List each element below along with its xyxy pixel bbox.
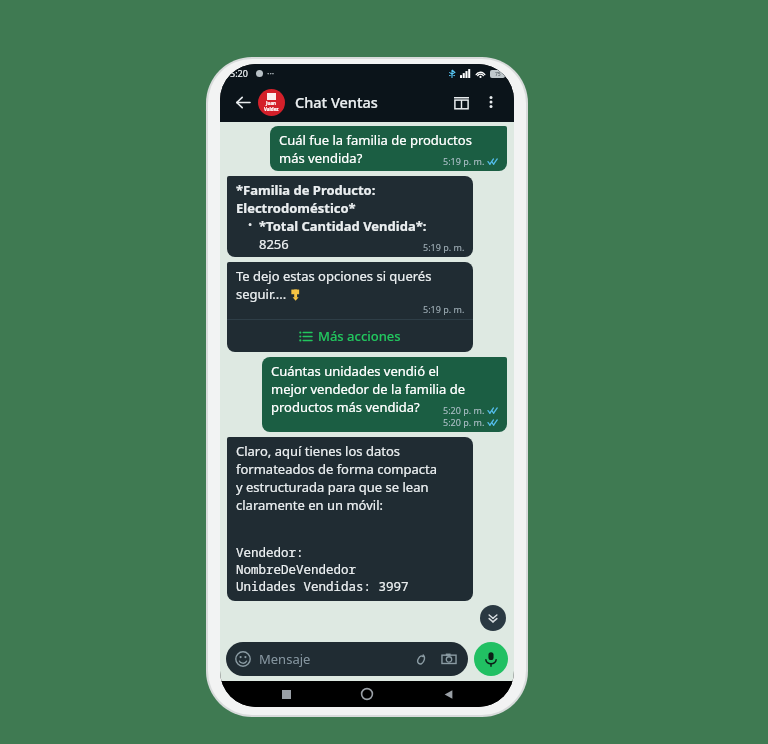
staticText: Mensaje xyxy=(259,650,311,668)
staticText: Chat Ventas xyxy=(295,92,378,112)
staticText: • xyxy=(248,217,253,232)
button[interactable]: Te dejo estas opciones si querés xyxy=(227,262,473,352)
staticText: Unidades Vendidas: 3997 xyxy=(236,578,409,595)
staticText: Te dejo estas opciones si querés xyxy=(236,267,432,285)
button[interactable]: Back xyxy=(228,88,256,116)
staticText: claramente en un móvil: xyxy=(236,496,383,514)
button[interactable]: Voice message xyxy=(474,642,508,676)
button[interactable]: Más acciones xyxy=(227,320,473,352)
staticText: *Familia de Producto: xyxy=(236,181,376,199)
staticText: mejor vendedor de la familia de xyxy=(271,380,466,398)
button[interactable]: Recents xyxy=(271,681,301,707)
button[interactable]: Camera xyxy=(439,649,459,669)
staticText: Vendedor: xyxy=(236,544,304,561)
staticText: 5:19 p. m. xyxy=(443,155,485,167)
button[interactable]: More options xyxy=(476,87,506,117)
staticText: 5:20 p. m. xyxy=(443,404,485,416)
staticText: y estructurada para que se lean xyxy=(236,478,429,496)
staticText: Cuál fue la familia de productos xyxy=(279,131,472,149)
button[interactable]: Scroll to bottom xyxy=(480,605,506,631)
button[interactable]: Cuál fue la familia de productos xyxy=(270,126,507,171)
staticText: seguir.... xyxy=(236,285,287,303)
button[interactable]: Mensaje xyxy=(226,642,468,676)
staticText: Juan xyxy=(266,100,277,106)
staticText: más vendida? xyxy=(279,149,363,167)
button[interactable]: *Familia de Producto: xyxy=(227,176,473,257)
staticText: Cuántas unidades vendió el xyxy=(271,362,440,380)
button[interactable]: Claro, aquí tienes los datos xyxy=(227,437,473,601)
staticText: Claro, aquí tienes los datos xyxy=(236,442,401,460)
button[interactable]: Profile xyxy=(258,89,285,116)
button[interactable]: Attach xyxy=(410,649,430,669)
staticText: NombreDeVendedor xyxy=(236,561,357,578)
staticText: formateados de forma compacta xyxy=(236,460,437,478)
staticText: 5:20 p. m. xyxy=(443,416,485,428)
staticText: 5:19 p. m. xyxy=(423,303,465,315)
staticText: 5:19 p. m. xyxy=(423,241,465,253)
button[interactable]: Chat Ventas xyxy=(295,92,446,112)
button[interactable]: Home xyxy=(352,681,382,707)
staticText: *Total Cantidad Vendida*: xyxy=(259,217,427,235)
staticText: productos más vendida? xyxy=(271,398,420,416)
staticText: 75 xyxy=(495,71,501,78)
staticText: 8256 xyxy=(259,235,289,253)
staticText: ··· xyxy=(267,67,275,79)
staticText: 5:20 xyxy=(230,67,248,79)
button[interactable]: Back xyxy=(433,681,463,707)
staticText: Valdez xyxy=(264,106,279,112)
button[interactable]: Catalog xyxy=(446,87,476,117)
button[interactable]: Cuántas unidades vendió el xyxy=(262,357,507,432)
staticText: Electrodoméstico* xyxy=(236,199,356,217)
staticText: Más acciones xyxy=(318,327,401,345)
